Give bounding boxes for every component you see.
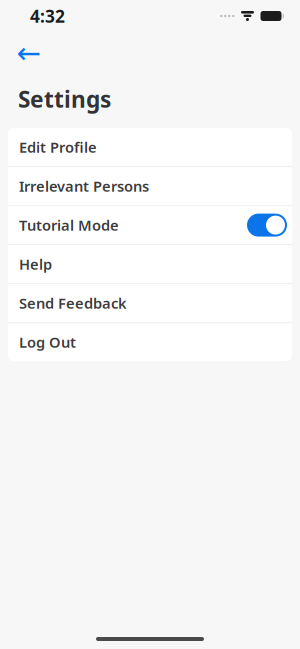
staticText: 4:32	[30, 4, 65, 27]
staticText: Help	[19, 254, 52, 274]
staticText: Irrelevant Persons	[19, 176, 149, 196]
button[interactable]: Edit Profile	[8, 128, 292, 166]
button[interactable]: Send Feedback	[8, 284, 292, 322]
button[interactable]: Log Out	[8, 323, 292, 361]
button[interactable]: Tutorial Mode	[8, 206, 292, 244]
staticText: Settings	[18, 84, 111, 114]
button[interactable]: Back	[12, 38, 46, 68]
staticText: Tutorial Mode	[19, 215, 119, 235]
staticText: ←	[16, 36, 41, 70]
button[interactable]: Help	[8, 245, 292, 283]
button[interactable]: Irrelevant Persons	[8, 167, 292, 205]
staticText: Log Out	[19, 332, 76, 352]
staticText: Send Feedback	[19, 293, 127, 313]
staticText: Edit Profile	[19, 137, 97, 157]
